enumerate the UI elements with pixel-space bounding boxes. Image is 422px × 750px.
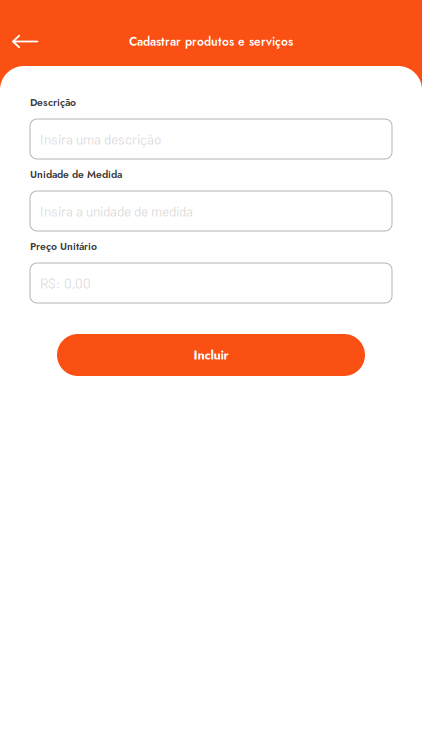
staticText: R$: 0,00 [40, 275, 91, 291]
button[interactable]: Incluir [57, 334, 365, 376]
button[interactable]: Back [0, 24, 54, 59]
staticText: Insira uma descrição [40, 131, 161, 147]
staticText: Preço Unitário [30, 239, 97, 254]
staticText: Unidade de Medida [30, 167, 122, 182]
staticText: Insira a unidade de medida [40, 203, 193, 219]
staticText: Incluir [193, 346, 228, 364]
staticText: Descrição [30, 95, 76, 110]
staticText: Cadastrar produtos e serviços [129, 33, 293, 50]
